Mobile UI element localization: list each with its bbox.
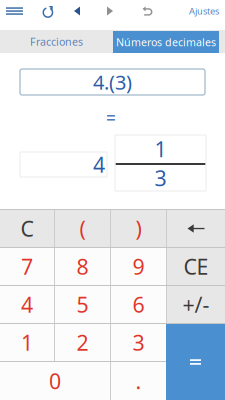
staticText: 1 [21, 328, 33, 357]
staticText: 7 [21, 252, 33, 281]
button[interactable]: 5 [55, 286, 110, 323]
button[interactable]: 8 [55, 248, 110, 285]
button[interactable]: 3 [111, 324, 166, 361]
button[interactable]: Equals [166, 324, 225, 400]
button[interactable]: Números decimales [113, 30, 225, 53]
staticText: CE [183, 252, 208, 281]
staticText: 8 [76, 252, 88, 281]
button[interactable]: CE [167, 248, 225, 285]
button[interactable]: . [111, 362, 166, 400]
staticText: 9 [132, 252, 144, 281]
button[interactable]: Back [68, 0, 86, 22]
staticText: = [106, 106, 116, 129]
staticText: 2 [76, 328, 88, 357]
button[interactable]: Backspace [167, 210, 225, 247]
button[interactable]: 4 [0, 286, 54, 323]
staticText: 3 [132, 328, 144, 357]
button[interactable]: Menu [0, 0, 29, 22]
staticText: Fracciones [30, 34, 83, 49]
button[interactable]: 7 [0, 248, 54, 285]
button[interactable]: Fracciones [0, 30, 113, 53]
button[interactable]: ) [111, 210, 166, 247]
button[interactable]: +/- [167, 286, 225, 323]
button[interactable]: Ajustes [183, 0, 225, 22]
staticText: +/- [182, 290, 209, 319]
staticText: 1 [154, 135, 166, 163]
button[interactable]: 2 [55, 324, 110, 361]
staticText: 5 [76, 290, 88, 319]
staticText: 4.(3) [93, 69, 132, 95]
button[interactable]: 1 [0, 324, 54, 361]
staticText: 3 [154, 164, 166, 192]
button[interactable]: 0 [0, 362, 110, 400]
button[interactable]: ( [55, 210, 110, 247]
staticText: 4 [93, 150, 105, 179]
button[interactable]: Forward [86, 0, 134, 22]
staticText: ( [79, 214, 85, 243]
staticText: . [135, 367, 141, 395]
staticText: 0 [49, 367, 61, 395]
button[interactable]: C [0, 210, 54, 247]
button[interactable]: Refresh [29, 0, 68, 22]
staticText: 6 [132, 290, 144, 319]
staticText: Ajustes [189, 5, 219, 17]
button[interactable]: 9 [111, 248, 166, 285]
staticText: C [20, 214, 33, 243]
button[interactable]: Undo [134, 0, 162, 22]
staticText: ) [135, 214, 141, 243]
staticText: Números decimales [116, 35, 216, 49]
staticText: 4 [21, 290, 33, 319]
button[interactable]: 6 [111, 286, 166, 323]
